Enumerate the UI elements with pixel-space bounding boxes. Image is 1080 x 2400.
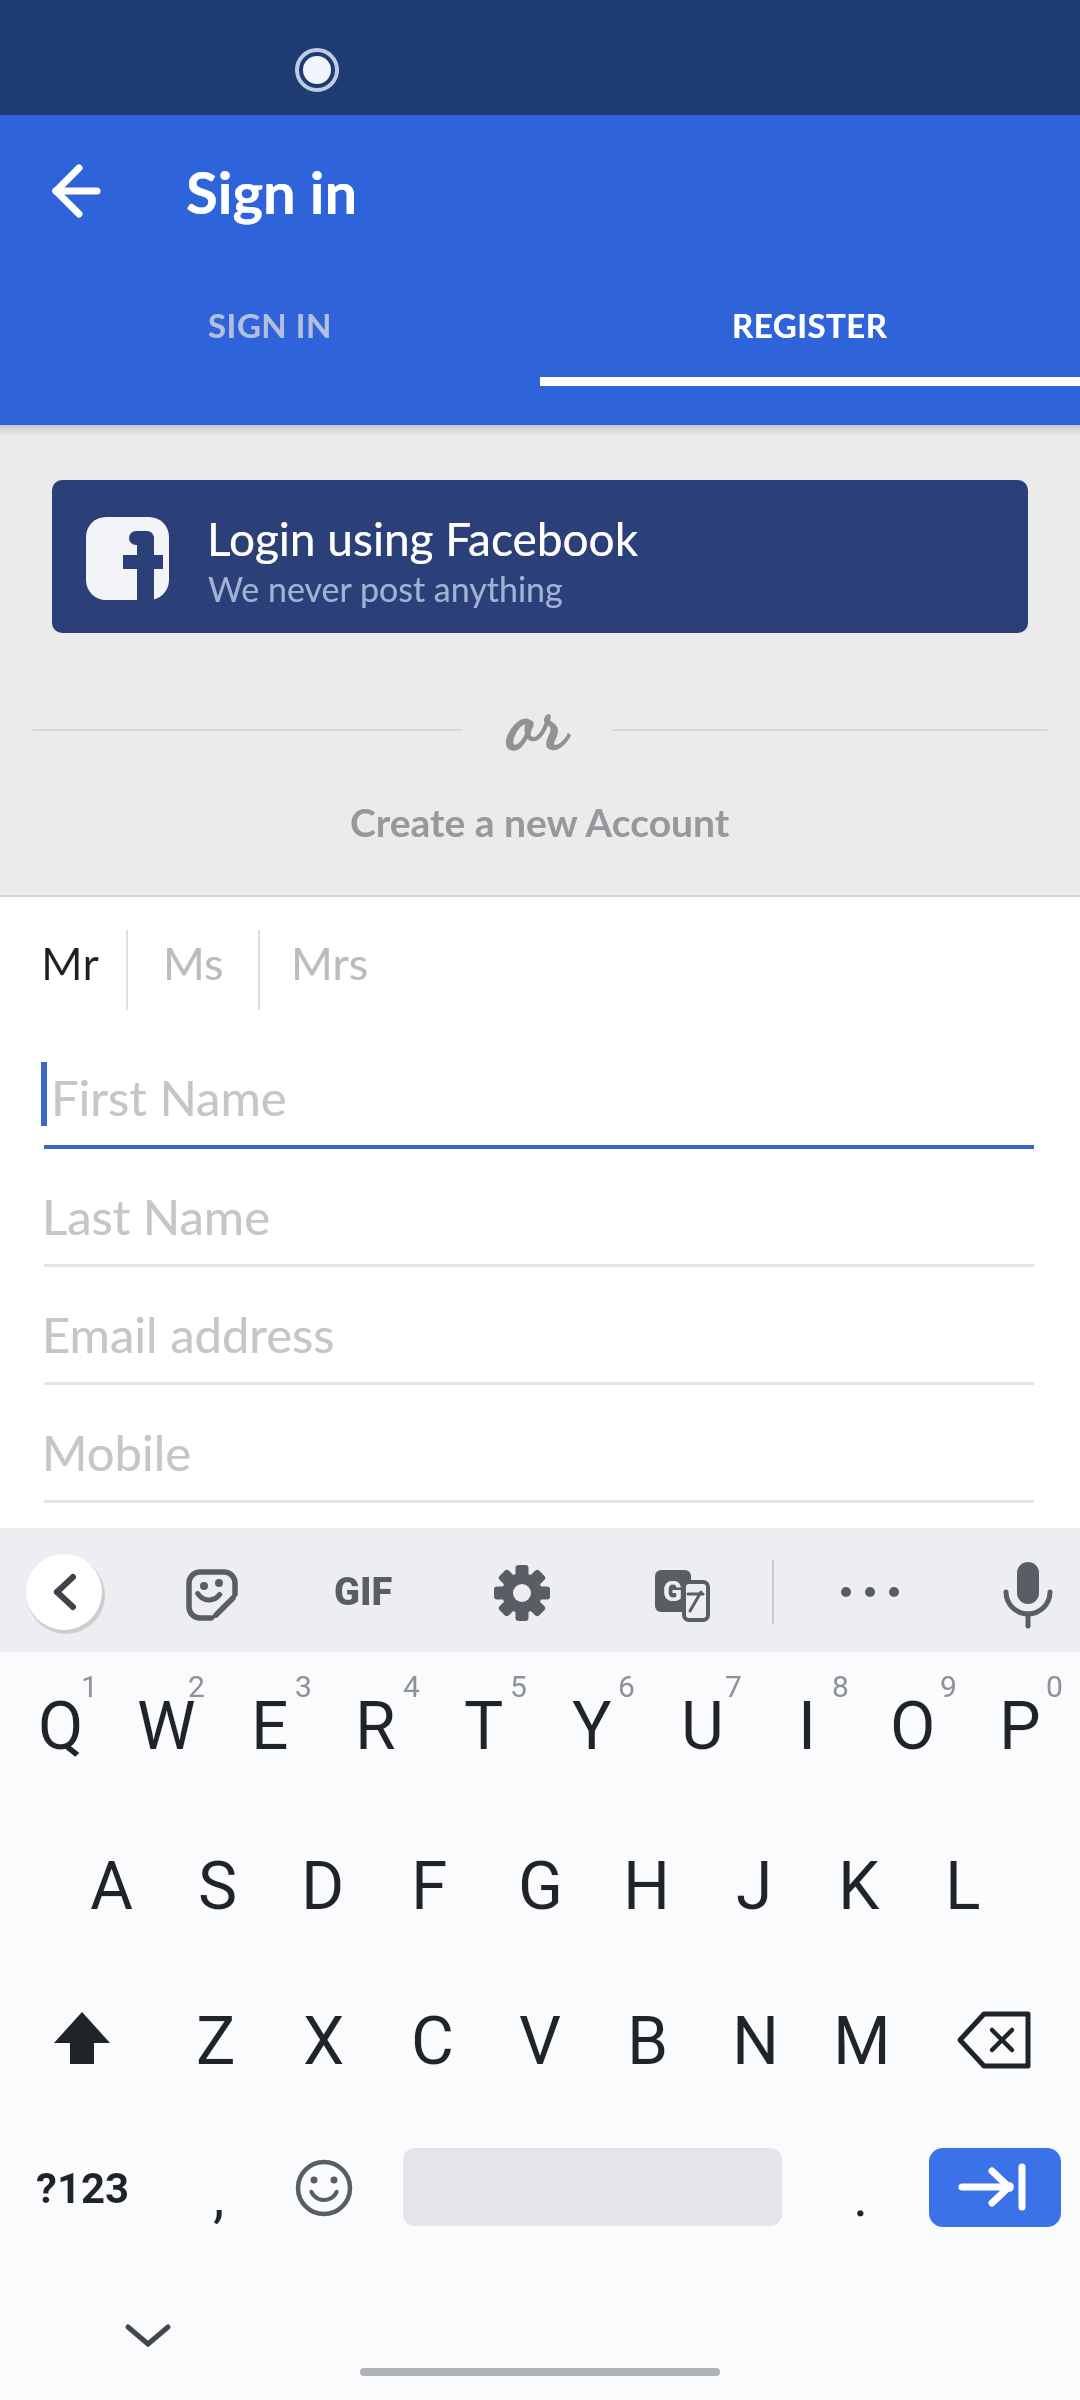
staticText: Z [196,2003,236,2080]
staticText: Mrs [291,936,369,990]
staticText: D [301,1848,345,1925]
staticText: V [519,2003,562,2080]
staticText: P [999,1688,1041,1765]
staticText: Last Name [42,1187,271,1246]
staticText: 1 [81,1669,98,1704]
staticText: Create a new Account [350,799,730,846]
staticText: ?123 [36,2164,130,2213]
staticText: We never post anything [208,568,563,609]
staticText: W [137,1688,196,1765]
staticText: 3 [295,1669,312,1704]
staticText: I [798,1688,816,1765]
staticText: Email address [42,1305,335,1364]
staticText: SIGN IN [208,305,332,345]
staticText: Q [38,1688,84,1765]
button[interactable] [30,145,122,237]
staticText: G [663,1575,683,1608]
staticText: F [411,1848,448,1925]
staticText: C [411,2003,454,2080]
staticText: REGISTER [732,305,888,345]
staticText: 7 [725,1669,742,1704]
staticText: . [853,2162,869,2230]
staticText: E [251,1688,289,1765]
staticText: 4 [403,1669,420,1704]
staticText: L [945,1848,981,1925]
staticText: U [681,1688,724,1765]
staticText: Mobile [42,1423,192,1482]
staticText: X [303,2003,345,2080]
button[interactable] [52,480,1028,633]
staticText: 5 [510,1669,527,1704]
staticText: O [890,1688,936,1765]
staticText: H [623,1848,671,1925]
staticText: M [833,2003,891,2080]
staticText: or [508,675,567,769]
button[interactable] [540,270,1080,425]
staticText: Mr [41,936,99,990]
staticText: 0 [1046,1669,1063,1704]
staticText: B [627,2003,669,2080]
staticText: J [736,1848,773,1925]
staticText: 2 [188,1669,205,1704]
staticText: 9 [940,1669,957,1704]
staticText: S [198,1848,238,1925]
staticText: Ms [163,936,224,990]
staticText: A [90,1848,134,1925]
staticText: Y [572,1688,612,1765]
staticText: 6 [618,1669,635,1704]
staticText: T [464,1688,504,1765]
button[interactable] [0,270,540,425]
staticText: Login using Facebook [207,511,639,566]
staticText: 8 [832,1669,849,1704]
button[interactable] [929,2148,1061,2227]
staticText: R [355,1688,396,1765]
staticText: , [213,2162,225,2230]
staticText: GIF [334,1570,393,1615]
staticText: Sign in [186,157,358,227]
staticText: N [732,2003,780,2080]
staticText: K [838,1848,880,1925]
staticText: G [518,1848,563,1925]
staticText: First Name [51,1068,287,1127]
